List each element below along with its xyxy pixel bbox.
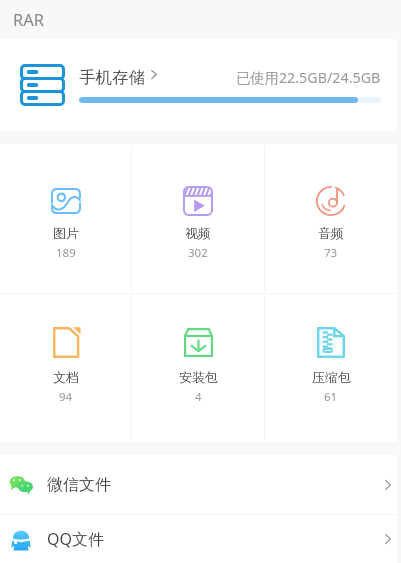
staticText: QQ文件 [47, 528, 104, 550]
button[interactable]: 微信文件 [0, 455, 397, 514]
staticText: 已使用22.5GB/24.5GB [236, 68, 381, 88]
button[interactable]: 音频 [265, 144, 397, 293]
staticText: 61 [324, 389, 338, 405]
staticText: 73 [324, 245, 338, 261]
staticText: 302 [188, 245, 208, 261]
staticText: 文档 [53, 369, 79, 385]
staticText: 4 [195, 389, 202, 405]
button[interactable]: 文档 [0, 294, 131, 442]
staticText: 图片 [53, 225, 79, 241]
button[interactable]: 压缩包 [265, 294, 397, 442]
staticText: 189 [56, 245, 76, 261]
button[interactable]: 手机存储 [0, 39, 397, 131]
staticText: 微信文件 [47, 475, 111, 495]
staticText: RAR [13, 8, 45, 30]
button[interactable]: 安装包 [132, 294, 264, 442]
staticText: 手机存储 [79, 67, 145, 88]
button[interactable]: 图片 [0, 144, 131, 293]
staticText: 94 [59, 389, 73, 405]
staticText: 安装包 [179, 369, 218, 385]
button[interactable]: 视频 [132, 144, 264, 293]
staticText: 视频 [185, 225, 211, 241]
button[interactable]: QQ文件 [0, 515, 397, 563]
staticText: 压缩包 [312, 369, 351, 385]
staticText: 音频 [318, 225, 344, 241]
